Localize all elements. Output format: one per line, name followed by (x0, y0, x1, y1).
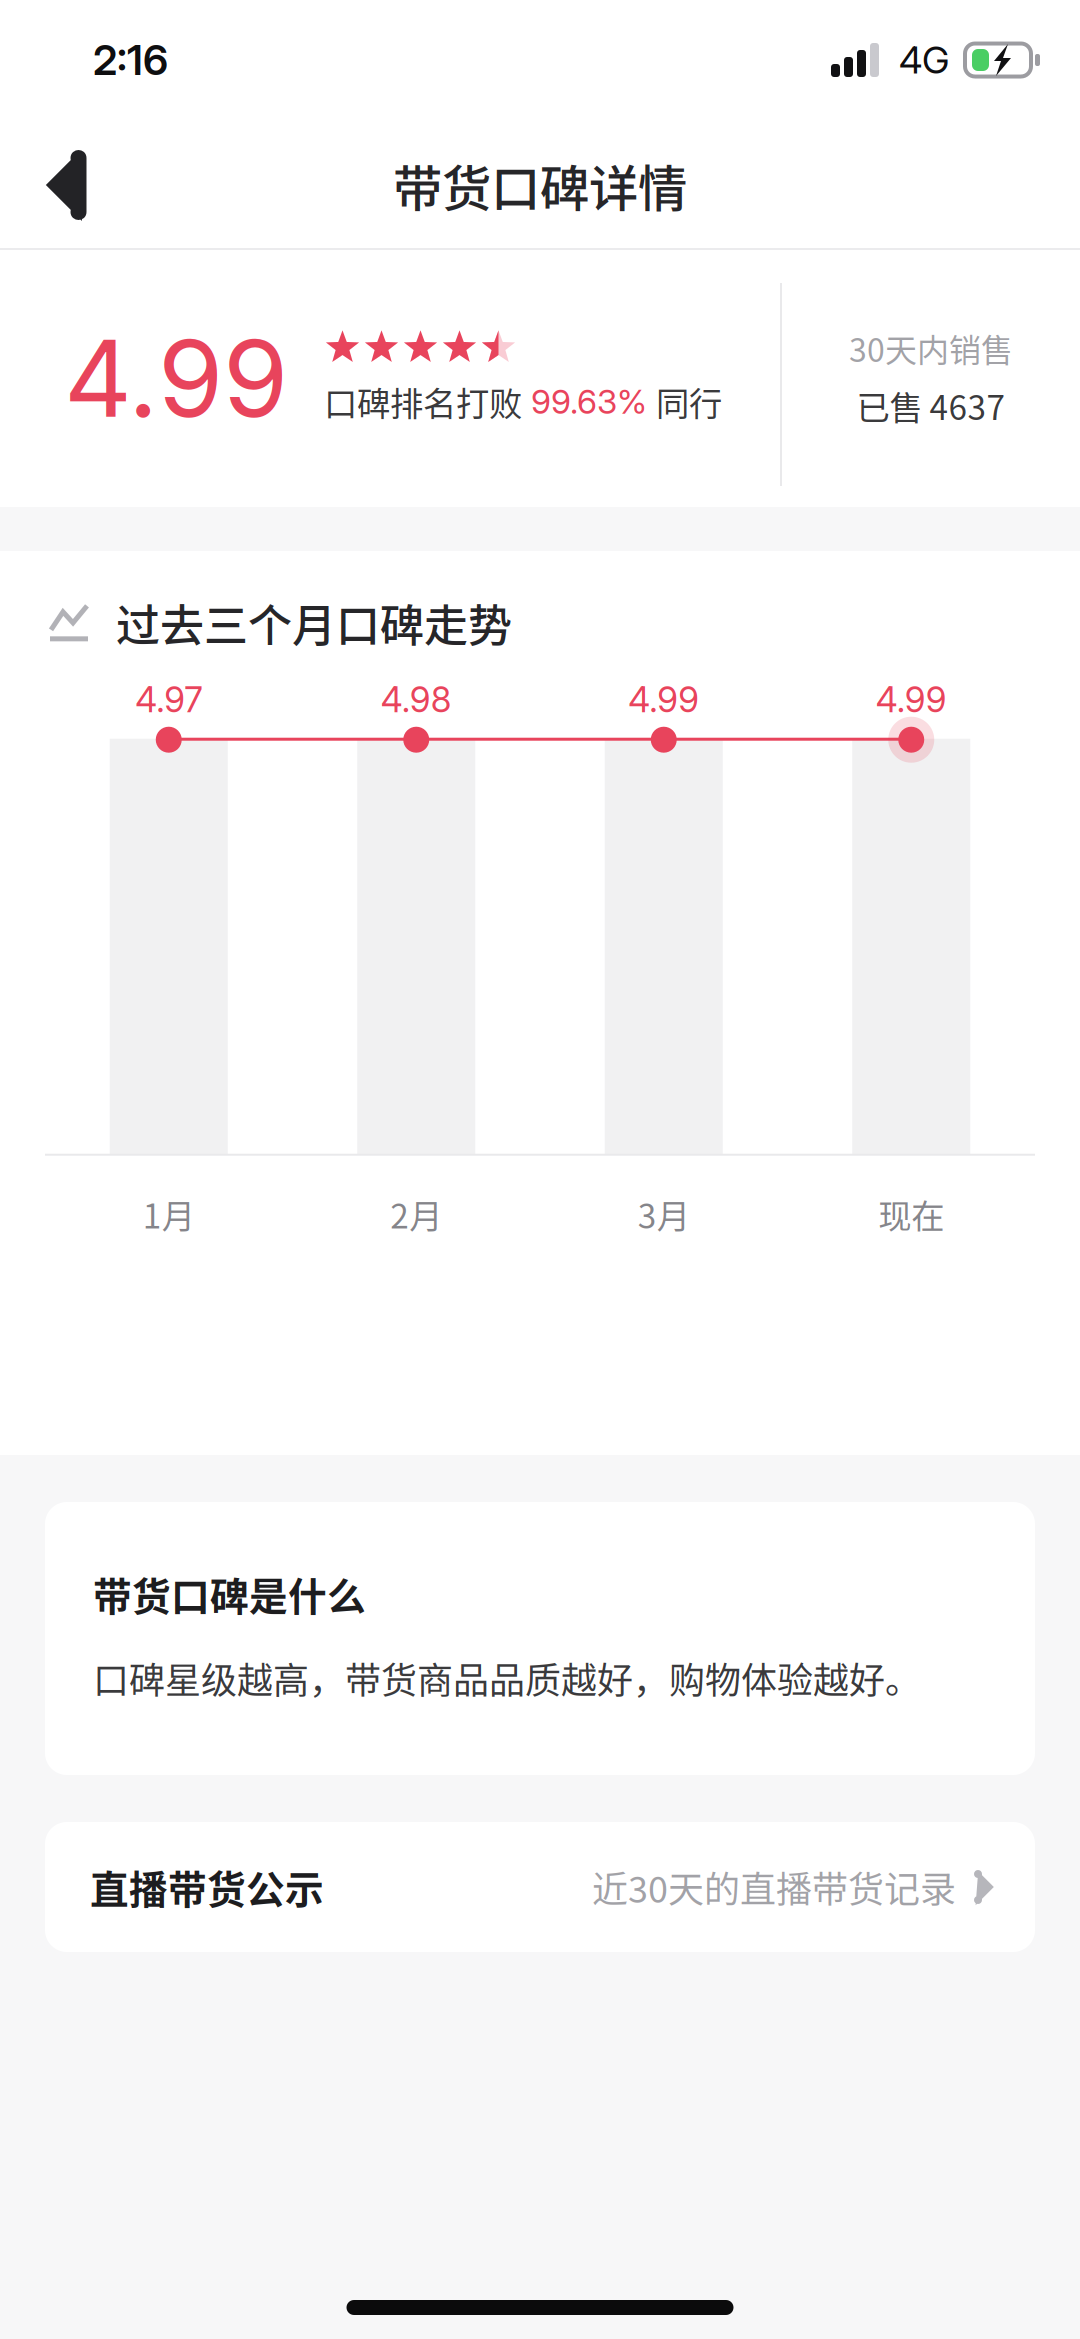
staticText: 4.97 (135, 679, 202, 721)
button[interactable]: Back (0, 120, 130, 250)
staticText: 直播带货公示 (90, 1859, 324, 1915)
staticText: 带货口碑详情 (393, 149, 687, 221)
staticText: 近30天的直播带货记录 (592, 1861, 956, 1913)
staticText: 现在 (878, 1190, 944, 1238)
staticText: 4.98 (381, 679, 452, 721)
staticText: 30天内销售 (849, 325, 1013, 371)
staticText: 过去三个月口碑走势 (116, 591, 512, 655)
staticText: 2月 (390, 1190, 442, 1238)
staticText: 同行 (656, 377, 722, 426)
staticText: 已售 4637 (856, 381, 1005, 430)
button[interactable]: 直播带货公示 (45, 1822, 1035, 1952)
staticText: 口碑排名打败 (324, 377, 522, 426)
staticText: 3月 (638, 1190, 690, 1238)
staticText: 4G (899, 37, 949, 83)
staticText: 带货口碑是什么 (93, 1566, 366, 1622)
staticText: 4.99 (64, 315, 288, 442)
staticText: 1月 (143, 1190, 195, 1238)
staticText: 4.99 (876, 679, 947, 721)
staticText: 4.99 (628, 679, 699, 721)
staticText: 2:16 (93, 35, 168, 85)
staticText: 口碑星级越高，带货商品品质越好，购物体验越好。 (93, 1652, 921, 1704)
staticText: 99.63% (522, 381, 656, 422)
